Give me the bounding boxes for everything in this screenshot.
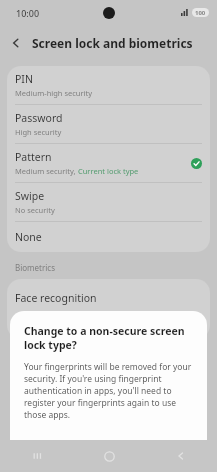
staticText: No security bbox=[15, 205, 55, 215]
staticText: Medium security, bbox=[15, 166, 78, 176]
staticText: 100 bbox=[195, 9, 206, 17]
button[interactable]: Password bbox=[7, 105, 210, 143]
staticText: Your fingerprints will be removed for yo… bbox=[24, 361, 193, 421]
staticText: High security bbox=[15, 127, 62, 137]
staticText: Current lock type bbox=[78, 166, 139, 176]
staticText: Swipe bbox=[15, 189, 45, 203]
staticText: Biometrics bbox=[15, 262, 56, 273]
button[interactable]: Face recognition bbox=[7, 279, 210, 317]
button[interactable]: Remove data bbox=[109, 435, 207, 469]
staticText: Password bbox=[15, 111, 63, 125]
staticText: Pattern bbox=[15, 150, 52, 164]
staticText: PIN bbox=[15, 72, 33, 86]
staticText: Screen lock and biometrics bbox=[32, 35, 193, 51]
staticText: Change to a non-secure screen lock type? bbox=[24, 324, 193, 352]
staticText: Medium-high security bbox=[15, 88, 93, 98]
button[interactable]: Back bbox=[0, 27, 32, 59]
button[interactable]: Pattern bbox=[7, 144, 210, 182]
staticText: 10:00 bbox=[16, 7, 40, 19]
button[interactable]: None bbox=[7, 222, 210, 252]
button[interactable]: Swipe bbox=[7, 183, 210, 221]
staticText: Face recognition bbox=[15, 291, 97, 305]
button[interactable]: PIN bbox=[7, 66, 210, 104]
staticText: None bbox=[15, 230, 42, 244]
button[interactable]: Cancel bbox=[10, 435, 108, 469]
